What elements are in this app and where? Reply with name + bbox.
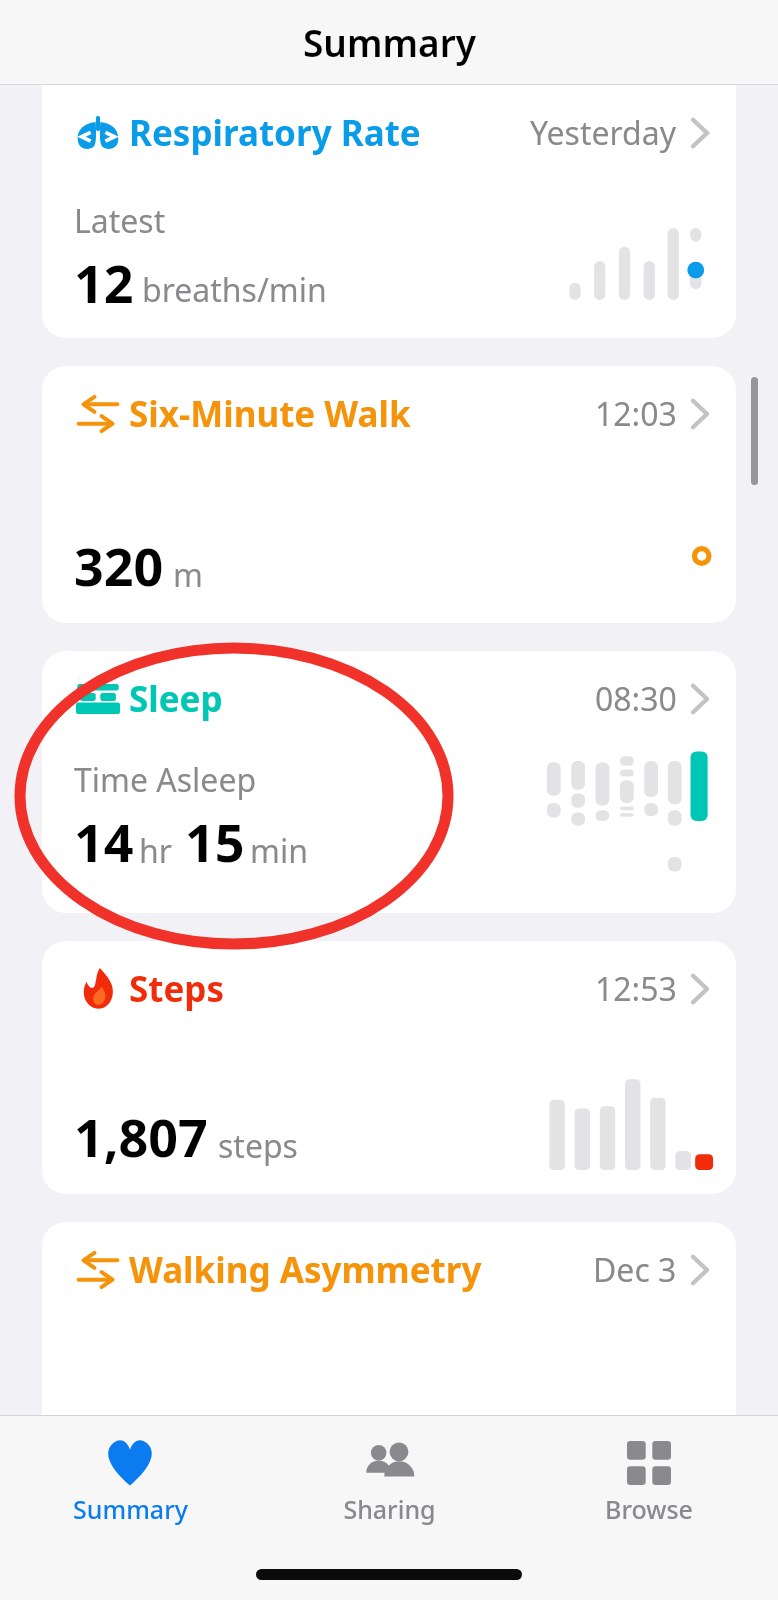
- staticText: Steps: [129, 965, 225, 1013]
- staticText: m: [173, 553, 203, 597]
- other: Summary: [105, 1440, 155, 1486]
- button[interactable]: Sharing: [260, 1430, 519, 1532]
- staticText: Dec 3: [593, 1248, 677, 1292]
- staticText: min: [250, 829, 308, 873]
- staticText: steps: [218, 1124, 298, 1168]
- staticText: 08:30: [595, 677, 677, 721]
- button[interactable]: Summary: [0, 1430, 260, 1532]
- other: Sharing: [361, 1442, 419, 1484]
- staticText: Walking Asymmetry: [129, 1246, 482, 1294]
- staticText: Latest: [74, 199, 166, 243]
- staticText: Summary: [303, 17, 476, 67]
- staticText: 15: [185, 806, 245, 877]
- other: Browse: [627, 1441, 671, 1485]
- staticText: 320: [74, 530, 164, 601]
- staticText: Sleep: [129, 675, 223, 723]
- other: Respiratory rate: [75, 116, 121, 150]
- other: Sleep: [75, 684, 121, 714]
- staticText: hr: [139, 829, 172, 873]
- staticText: 12:53: [595, 967, 677, 1011]
- staticText: Time Asleep: [74, 758, 257, 802]
- button[interactable]: Walking: [42, 366, 736, 623]
- staticText: Six-Minute Walk: [129, 390, 411, 438]
- staticText: Yesterday: [530, 111, 677, 155]
- staticText: 1,807: [74, 1101, 208, 1172]
- staticText: breaths/min: [142, 268, 327, 312]
- button[interactable]: Sleep: [42, 651, 736, 913]
- button[interactable]: Steps: [42, 941, 736, 1194]
- staticText: Sharing: [343, 1492, 436, 1526]
- staticText: Respiratory Rate: [129, 109, 421, 157]
- staticText: 14: [74, 806, 134, 877]
- other: Walking: [76, 1249, 120, 1291]
- other: Walking: [76, 393, 120, 435]
- button[interactable]: Respiratory rate: [42, 85, 736, 338]
- staticText: Browse: [605, 1492, 693, 1526]
- staticText: 12: [74, 247, 134, 316]
- button[interactable]: Walking: [42, 1222, 736, 1415]
- staticText: Summary: [73, 1492, 188, 1526]
- staticText: 12:03: [595, 392, 677, 436]
- other: Steps: [82, 968, 114, 1010]
- button[interactable]: Browse: [519, 1430, 778, 1532]
